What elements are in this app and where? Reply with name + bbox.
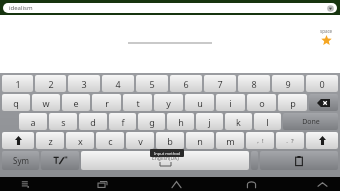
button[interactable]: 5 <box>136 75 168 92</box>
button[interactable]: s <box>49 113 77 130</box>
button[interactable]: l <box>254 113 281 130</box>
staticText: r <box>105 97 109 109</box>
staticText: 9 <box>285 78 291 90</box>
staticText: x <box>78 135 83 147</box>
button[interactable]: Menu <box>0 177 50 191</box>
button[interactable]: 4 <box>102 75 134 92</box>
button[interactable]: f <box>109 113 136 130</box>
button[interactable]: , ! <box>246 132 274 149</box>
staticText: u <box>197 97 203 109</box>
button[interactable]: x <box>66 132 94 149</box>
staticText: o <box>259 97 265 109</box>
button[interactable]: 3 <box>68 75 100 92</box>
staticText: v <box>138 135 143 147</box>
staticText: w <box>42 97 50 109</box>
staticText: h <box>178 116 184 128</box>
button[interactable]: 0 <box>306 75 338 92</box>
button[interactable]: 8 <box>238 75 270 92</box>
staticText: space <box>320 28 333 34</box>
staticText: 6 <box>183 78 189 90</box>
button[interactable]: d <box>79 113 107 130</box>
button[interactable]: Open dropdown <box>327 5 334 12</box>
staticText: Done <box>302 117 320 127</box>
button[interactable]: Favourite <box>320 28 333 46</box>
staticText: m <box>226 135 235 147</box>
staticText: 2 <box>48 78 54 90</box>
staticText: z <box>48 135 53 147</box>
staticText: y <box>166 97 171 109</box>
staticText: c <box>108 135 113 147</box>
button[interactable]: y <box>154 94 183 111</box>
button[interactable]: n <box>186 132 214 149</box>
staticText: . ? <box>286 137 294 145</box>
button[interactable]: b <box>156 132 184 149</box>
button[interactable]: r <box>92 94 121 111</box>
staticText: g <box>149 116 155 128</box>
staticText: n <box>197 135 203 147</box>
button[interactable]: 1 <box>2 75 33 92</box>
staticText: p <box>290 97 296 109</box>
button[interactable]: English(UK) <box>81 151 249 170</box>
button[interactable]: k <box>225 113 252 130</box>
button[interactable]: a <box>19 113 47 130</box>
button[interactable]: 6 <box>170 75 202 92</box>
button[interactable]: v <box>126 132 154 149</box>
button[interactable]: j <box>196 113 223 130</box>
button[interactable] <box>251 151 258 170</box>
staticText: i <box>229 97 232 109</box>
button[interactable]: Recents <box>80 177 124 191</box>
staticText: 5 <box>149 78 155 90</box>
staticText: j <box>208 116 211 128</box>
button[interactable]: g <box>138 113 165 130</box>
button[interactable]: Clipboard <box>260 151 338 170</box>
button[interactable]: m <box>216 132 244 149</box>
staticText: , ! <box>257 137 264 145</box>
button[interactable]: t <box>123 94 152 111</box>
button[interactable]: c <box>96 132 124 149</box>
button[interactable]: idealism <box>3 3 337 13</box>
button[interactable]: u <box>185 94 214 111</box>
staticText: e <box>73 97 79 109</box>
button[interactable]: 2 <box>35 75 66 92</box>
button[interactable]: e <box>62 94 90 111</box>
staticText: 7 <box>217 78 223 90</box>
button[interactable]: Sym <box>2 151 39 170</box>
button[interactable]: i <box>216 94 245 111</box>
staticText: 3 <box>81 78 87 90</box>
staticText: Input method <box>154 151 181 156</box>
button[interactable]: Expand <box>304 177 340 191</box>
staticText: l <box>266 116 269 128</box>
staticText: b <box>167 135 173 147</box>
staticText: f <box>121 116 125 128</box>
button[interactable]: o <box>247 94 276 111</box>
staticText: s <box>61 116 66 128</box>
staticText: idealism <box>9 4 33 12</box>
staticText: 1 <box>15 78 21 90</box>
staticText: t <box>136 97 140 109</box>
button[interactable]: Backspace <box>309 94 338 111</box>
staticText: 0 <box>319 78 325 90</box>
button[interactable]: h <box>167 113 194 130</box>
button[interactable]: q <box>2 94 30 111</box>
staticText: q <box>13 97 19 109</box>
staticText: a <box>30 116 36 128</box>
button[interactable]: 7 <box>204 75 236 92</box>
staticText: k <box>236 116 241 128</box>
button[interactable]: Back <box>229 177 273 191</box>
button[interactable]: p <box>278 94 307 111</box>
button[interactable]: Shift <box>306 132 338 149</box>
staticText: Sym <box>13 155 29 166</box>
button[interactable]: Handwriting input <box>41 151 79 170</box>
button[interactable]: Done <box>283 113 338 130</box>
staticText: English(UK) <box>152 155 179 162</box>
button[interactable]: . ? <box>276 132 304 149</box>
staticText: d <box>90 116 96 128</box>
button[interactable]: Shift <box>2 132 34 149</box>
button[interactable]: w <box>32 94 60 111</box>
button[interactable]: z <box>36 132 64 149</box>
button[interactable]: 9 <box>272 75 304 92</box>
button[interactable]: Home <box>154 177 198 191</box>
staticText: 4 <box>115 78 121 90</box>
staticText: 8 <box>251 78 257 90</box>
